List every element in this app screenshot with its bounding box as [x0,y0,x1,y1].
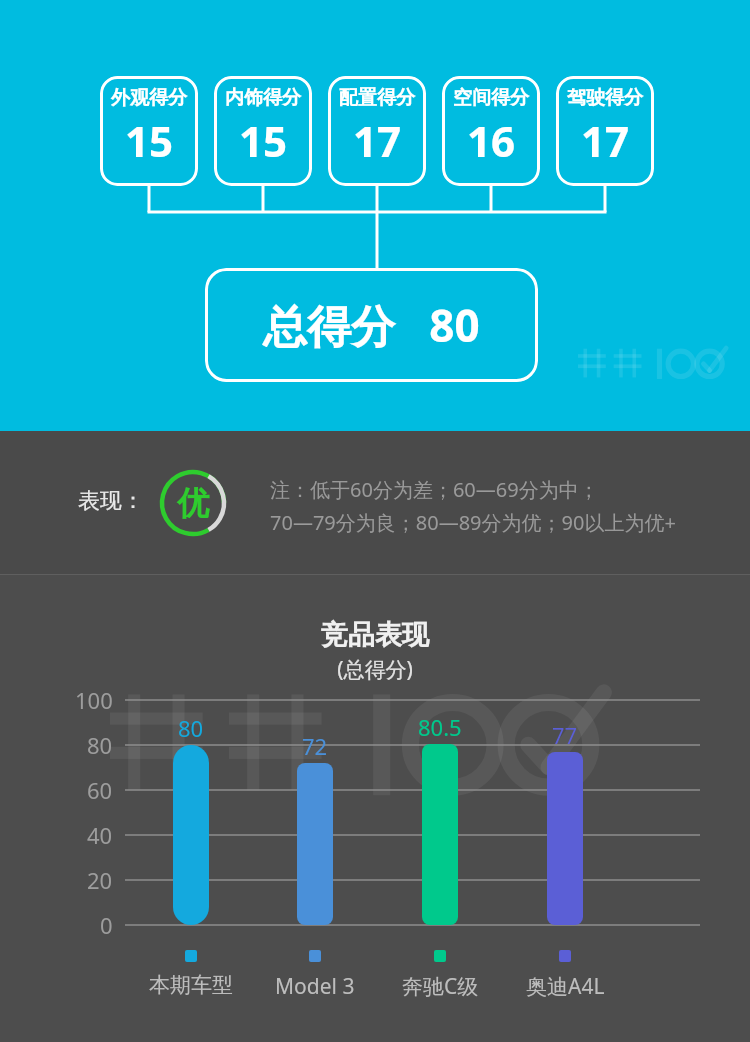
staticText: 70—79分为良；80—89分为优；90以上为优+ [270,509,676,536]
staticText: 竞品表现 [0,618,750,652]
button[interactable]: 驾驶得分 [556,76,654,186]
button[interactable]: 配置得分 [328,76,426,186]
staticText: Model 3 [275,972,355,1001]
staticText: 60 [87,775,113,805]
staticText: 优 [177,483,209,523]
staticText: 奥迪A4L [526,972,605,1001]
button[interactable]: 总得分 80 [205,268,538,382]
button[interactable]: 空间得分 [442,76,540,186]
staticText: 40 [87,820,113,850]
staticText: 16 [467,112,516,169]
staticText: 内饰得分 [225,86,301,110]
button[interactable]: 评级 优 [159,469,227,537]
staticText: 80 [178,713,204,743]
staticText: 72 [302,731,328,761]
button[interactable]: 80.5 [422,744,458,925]
staticText: 总得分 80 [263,295,480,355]
staticText: 100 [75,685,113,715]
staticText: 驾驶得分 [567,86,643,110]
staticText: 80.5 [418,712,462,742]
button[interactable]: 外观得分 [100,76,198,186]
staticText: 20 [87,865,113,895]
staticText: 0 [100,910,113,940]
staticText: 本期车型 [149,972,233,998]
button[interactable]: 80 [173,745,209,925]
staticText: 80 [87,730,113,760]
staticText: 表现： [78,487,144,515]
button[interactable]: 77 [547,752,583,925]
staticText: (总得分) [0,655,750,684]
staticText: 77 [552,720,578,750]
staticText: 17 [581,112,630,169]
button[interactable]: 72 [297,763,333,925]
button[interactable]: 内饰得分 [214,76,312,186]
staticText: 注：低于60分为差；60—69分为中； [270,476,599,503]
staticText: 15 [239,112,288,169]
staticText: 外观得分 [111,86,187,110]
staticText: 空间得分 [453,86,529,110]
staticText: 配置得分 [339,86,415,110]
staticText: 17 [353,112,402,169]
staticText: 15 [125,112,174,169]
staticText: 奔驰C级 [402,972,479,1001]
